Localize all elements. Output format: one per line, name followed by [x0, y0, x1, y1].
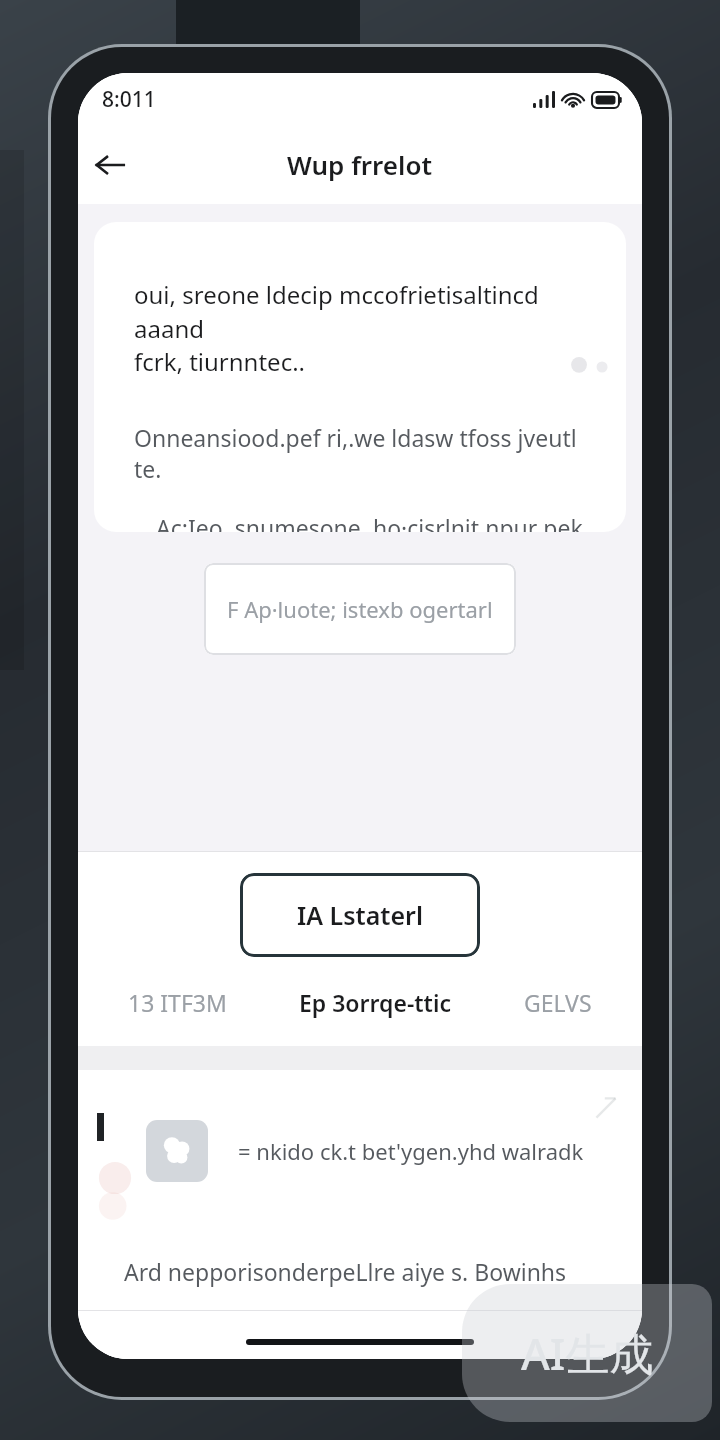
- button[interactable]: Ard nepporisonderpeLlre aiye s. Bowinhs: [78, 1232, 642, 1310]
- staticText: Onneansiood.pef ri,.we ldasw tfoss jveut…: [134, 422, 594, 484]
- staticText: oui, sreone ldecip mccofrietisaltincd aa…: [134, 278, 594, 345]
- button[interactable]: Ep 3orrqe-ttic: [293, 981, 458, 1024]
- button[interactable]: Back: [82, 137, 138, 193]
- staticText: 8:011: [102, 85, 156, 114]
- staticText: Ard nepporisonderpeLlre aiye s. Bowinhs: [124, 1256, 567, 1287]
- staticText: Wup frrelot: [287, 147, 433, 182]
- button[interactable]: GELVS: [518, 981, 598, 1024]
- staticText: Ep 3orrqe-ttic: [299, 987, 452, 1018]
- staticText: IA Lstaterl: [297, 898, 424, 932]
- staticText: Ac:Ieo. snumesone, ho·cisrlnit.npur pek.: [156, 512, 594, 532]
- button[interactable]: = nkido ck.t bet'ygen.yhd walradk: [78, 1070, 642, 1232]
- button[interactable]: F Ap·luote; istexb ogertarl: [204, 563, 516, 655]
- button[interactable]: 13 ITF3M: [122, 981, 233, 1024]
- staticText: fcrk, tiurnntec..: [134, 345, 306, 378]
- staticText: 13 ITF3M: [128, 987, 227, 1018]
- button[interactable]: IA Lstaterl: [240, 873, 480, 957]
- staticText: GELVS: [524, 987, 592, 1018]
- button[interactable]: oui, sreone ldecip mccofrietisaltincd aa…: [94, 222, 626, 532]
- staticText: AI生成: [521, 1323, 654, 1383]
- staticText: = nkido ck.t bet'ygen.yhd walradk: [238, 1136, 584, 1166]
- staticText: F Ap·luote; istexb ogertarl: [227, 594, 493, 624]
